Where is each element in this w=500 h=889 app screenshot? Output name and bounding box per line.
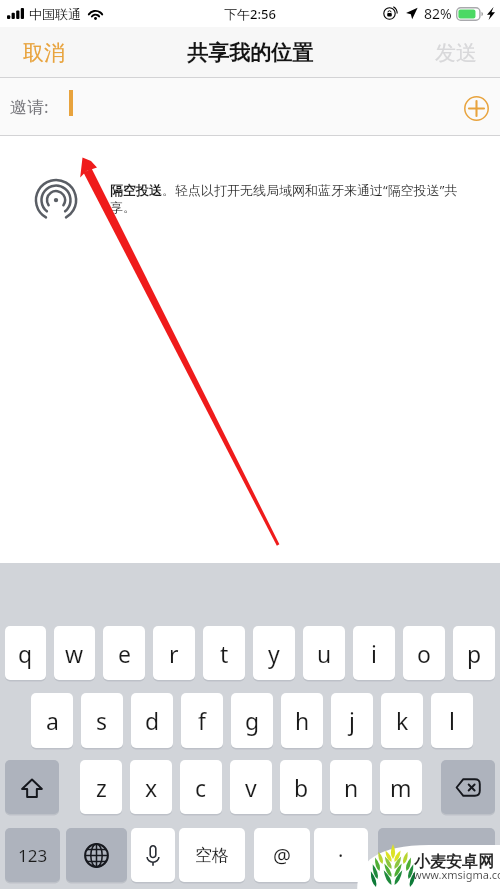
staticText: a <box>46 705 59 736</box>
staticText: b <box>294 772 309 803</box>
staticText: s <box>96 705 108 736</box>
button[interactable]: i <box>353 626 395 680</box>
button[interactable]: 123 <box>5 828 60 882</box>
button[interactable]: w <box>54 626 95 680</box>
button[interactable]: o <box>403 626 445 680</box>
staticText: 换行 <box>420 845 454 866</box>
staticText: · <box>338 842 344 869</box>
button[interactable]: t <box>203 626 245 680</box>
staticText: 82% <box>424 4 452 23</box>
staticText: j <box>349 705 355 736</box>
staticText: u <box>317 638 332 669</box>
button[interactable]: Backspace <box>441 760 495 814</box>
button[interactable]: y <box>253 626 295 680</box>
button[interactable]: d <box>131 693 173 748</box>
button[interactable]: c <box>180 760 222 814</box>
staticText: d <box>145 705 160 736</box>
staticText: 下午2:56 <box>224 5 276 23</box>
button[interactable]: m <box>380 760 422 814</box>
staticText: @ <box>273 842 291 869</box>
button[interactable]: 空格 <box>179 828 245 882</box>
button[interactable]: z <box>80 760 122 814</box>
button[interactable]: l <box>431 693 473 748</box>
staticText: c <box>195 772 207 803</box>
staticText: 取消 <box>23 40 65 66</box>
button[interactable]: 取消 <box>23 40 65 66</box>
button[interactable]: r <box>153 626 195 680</box>
staticText: f <box>198 705 206 736</box>
button[interactable]: Dictation <box>131 828 175 882</box>
button[interactable]: 发送 <box>435 40 477 66</box>
staticText: v <box>245 772 257 803</box>
staticText: q <box>18 638 33 669</box>
button[interactable]: a <box>31 693 73 748</box>
staticText: i <box>371 638 377 669</box>
staticText: 共享我的位置 <box>187 40 313 66</box>
button[interactable]: h <box>281 693 323 748</box>
staticText: 小麦安卓网 <box>414 852 494 872</box>
staticText: 邀请 <box>10 97 44 118</box>
staticText: 隔空投送。轻点以打开无线局域网和蓝牙来通过“隔空投送”共享。 <box>110 181 466 216</box>
button[interactable]: s <box>81 693 123 748</box>
staticText: 发送 <box>435 40 477 66</box>
button[interactable]: k <box>381 693 423 748</box>
button[interactable]: 换行 <box>378 828 495 882</box>
button[interactable]: x <box>130 760 172 814</box>
button[interactable]: j <box>331 693 373 748</box>
button[interactable]: p <box>453 626 495 680</box>
staticText: z <box>96 772 107 803</box>
staticText: o <box>417 638 431 669</box>
button[interactable]: f <box>181 693 223 748</box>
staticText: h <box>295 705 310 736</box>
staticText: 空格 <box>195 845 229 866</box>
staticText: n <box>344 772 359 803</box>
button[interactable]: u <box>303 626 345 680</box>
staticText: 123 <box>18 844 48 867</box>
staticText: g <box>245 705 260 736</box>
staticText: 中国联通 <box>29 6 81 22</box>
staticText: : <box>44 95 49 118</box>
staticText: y <box>268 638 280 669</box>
staticText: w <box>65 638 84 669</box>
button[interactable]: n <box>330 760 372 814</box>
staticText: r <box>169 638 179 669</box>
button[interactable]: v <box>230 760 272 814</box>
staticText: e <box>118 638 131 669</box>
button[interactable]: e <box>103 626 145 680</box>
staticText: m <box>390 772 412 803</box>
button[interactable]: @ <box>254 828 310 882</box>
button[interactable]: Shift <box>5 760 59 814</box>
button[interactable]: Switch keyboard <box>66 828 127 882</box>
button[interactable]: q <box>5 626 46 680</box>
staticText: x <box>145 772 158 803</box>
button[interactable]: · <box>314 828 368 882</box>
staticText: www.xmsigma.com <box>413 867 500 882</box>
staticText: k <box>396 705 409 736</box>
button[interactable]: Add contact <box>464 96 489 121</box>
button[interactable]: g <box>231 693 273 748</box>
button[interactable]: b <box>280 760 322 814</box>
staticText: p <box>467 638 482 669</box>
staticText: t <box>220 638 229 669</box>
staticText: l <box>449 705 455 736</box>
